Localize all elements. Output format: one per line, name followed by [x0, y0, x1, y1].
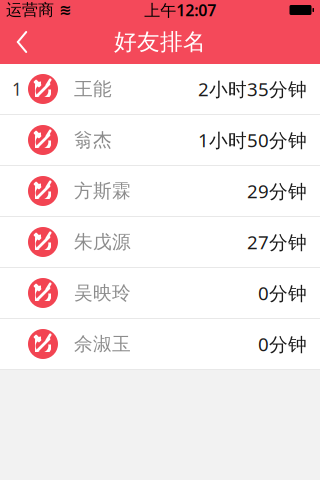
- staticText: 王能: [74, 77, 112, 100]
- staticText: 2小时35分钟: [198, 77, 307, 101]
- button[interactable]: [0, 268, 320, 319]
- staticText: 0分钟: [258, 281, 307, 305]
- staticText: 方斯霖: [74, 179, 131, 202]
- staticText: 1: [12, 77, 22, 100]
- staticText: 朱戊源: [74, 230, 131, 253]
- staticText: 好友排名: [114, 28, 206, 56]
- staticText: 29分钟: [247, 179, 307, 203]
- staticText: 佘淑玉: [74, 332, 131, 355]
- staticText: 0分钟: [258, 332, 307, 356]
- button[interactable]: [0, 319, 320, 370]
- staticText: 翁杰: [74, 128, 112, 151]
- button[interactable]: 1: [0, 64, 320, 115]
- button[interactable]: [0, 115, 320, 166]
- button[interactable]: [0, 217, 320, 268]
- staticText: 27分钟: [247, 230, 307, 254]
- staticText: 1小时50分钟: [198, 128, 307, 152]
- button[interactable]: Back: [0, 20, 44, 64]
- staticText: ≋: [54, 2, 71, 18]
- staticText: 上午12:07: [144, 0, 216, 21]
- staticText: 运营商: [6, 0, 54, 20]
- button[interactable]: [0, 166, 320, 217]
- staticText: 吴映玲: [74, 281, 131, 304]
